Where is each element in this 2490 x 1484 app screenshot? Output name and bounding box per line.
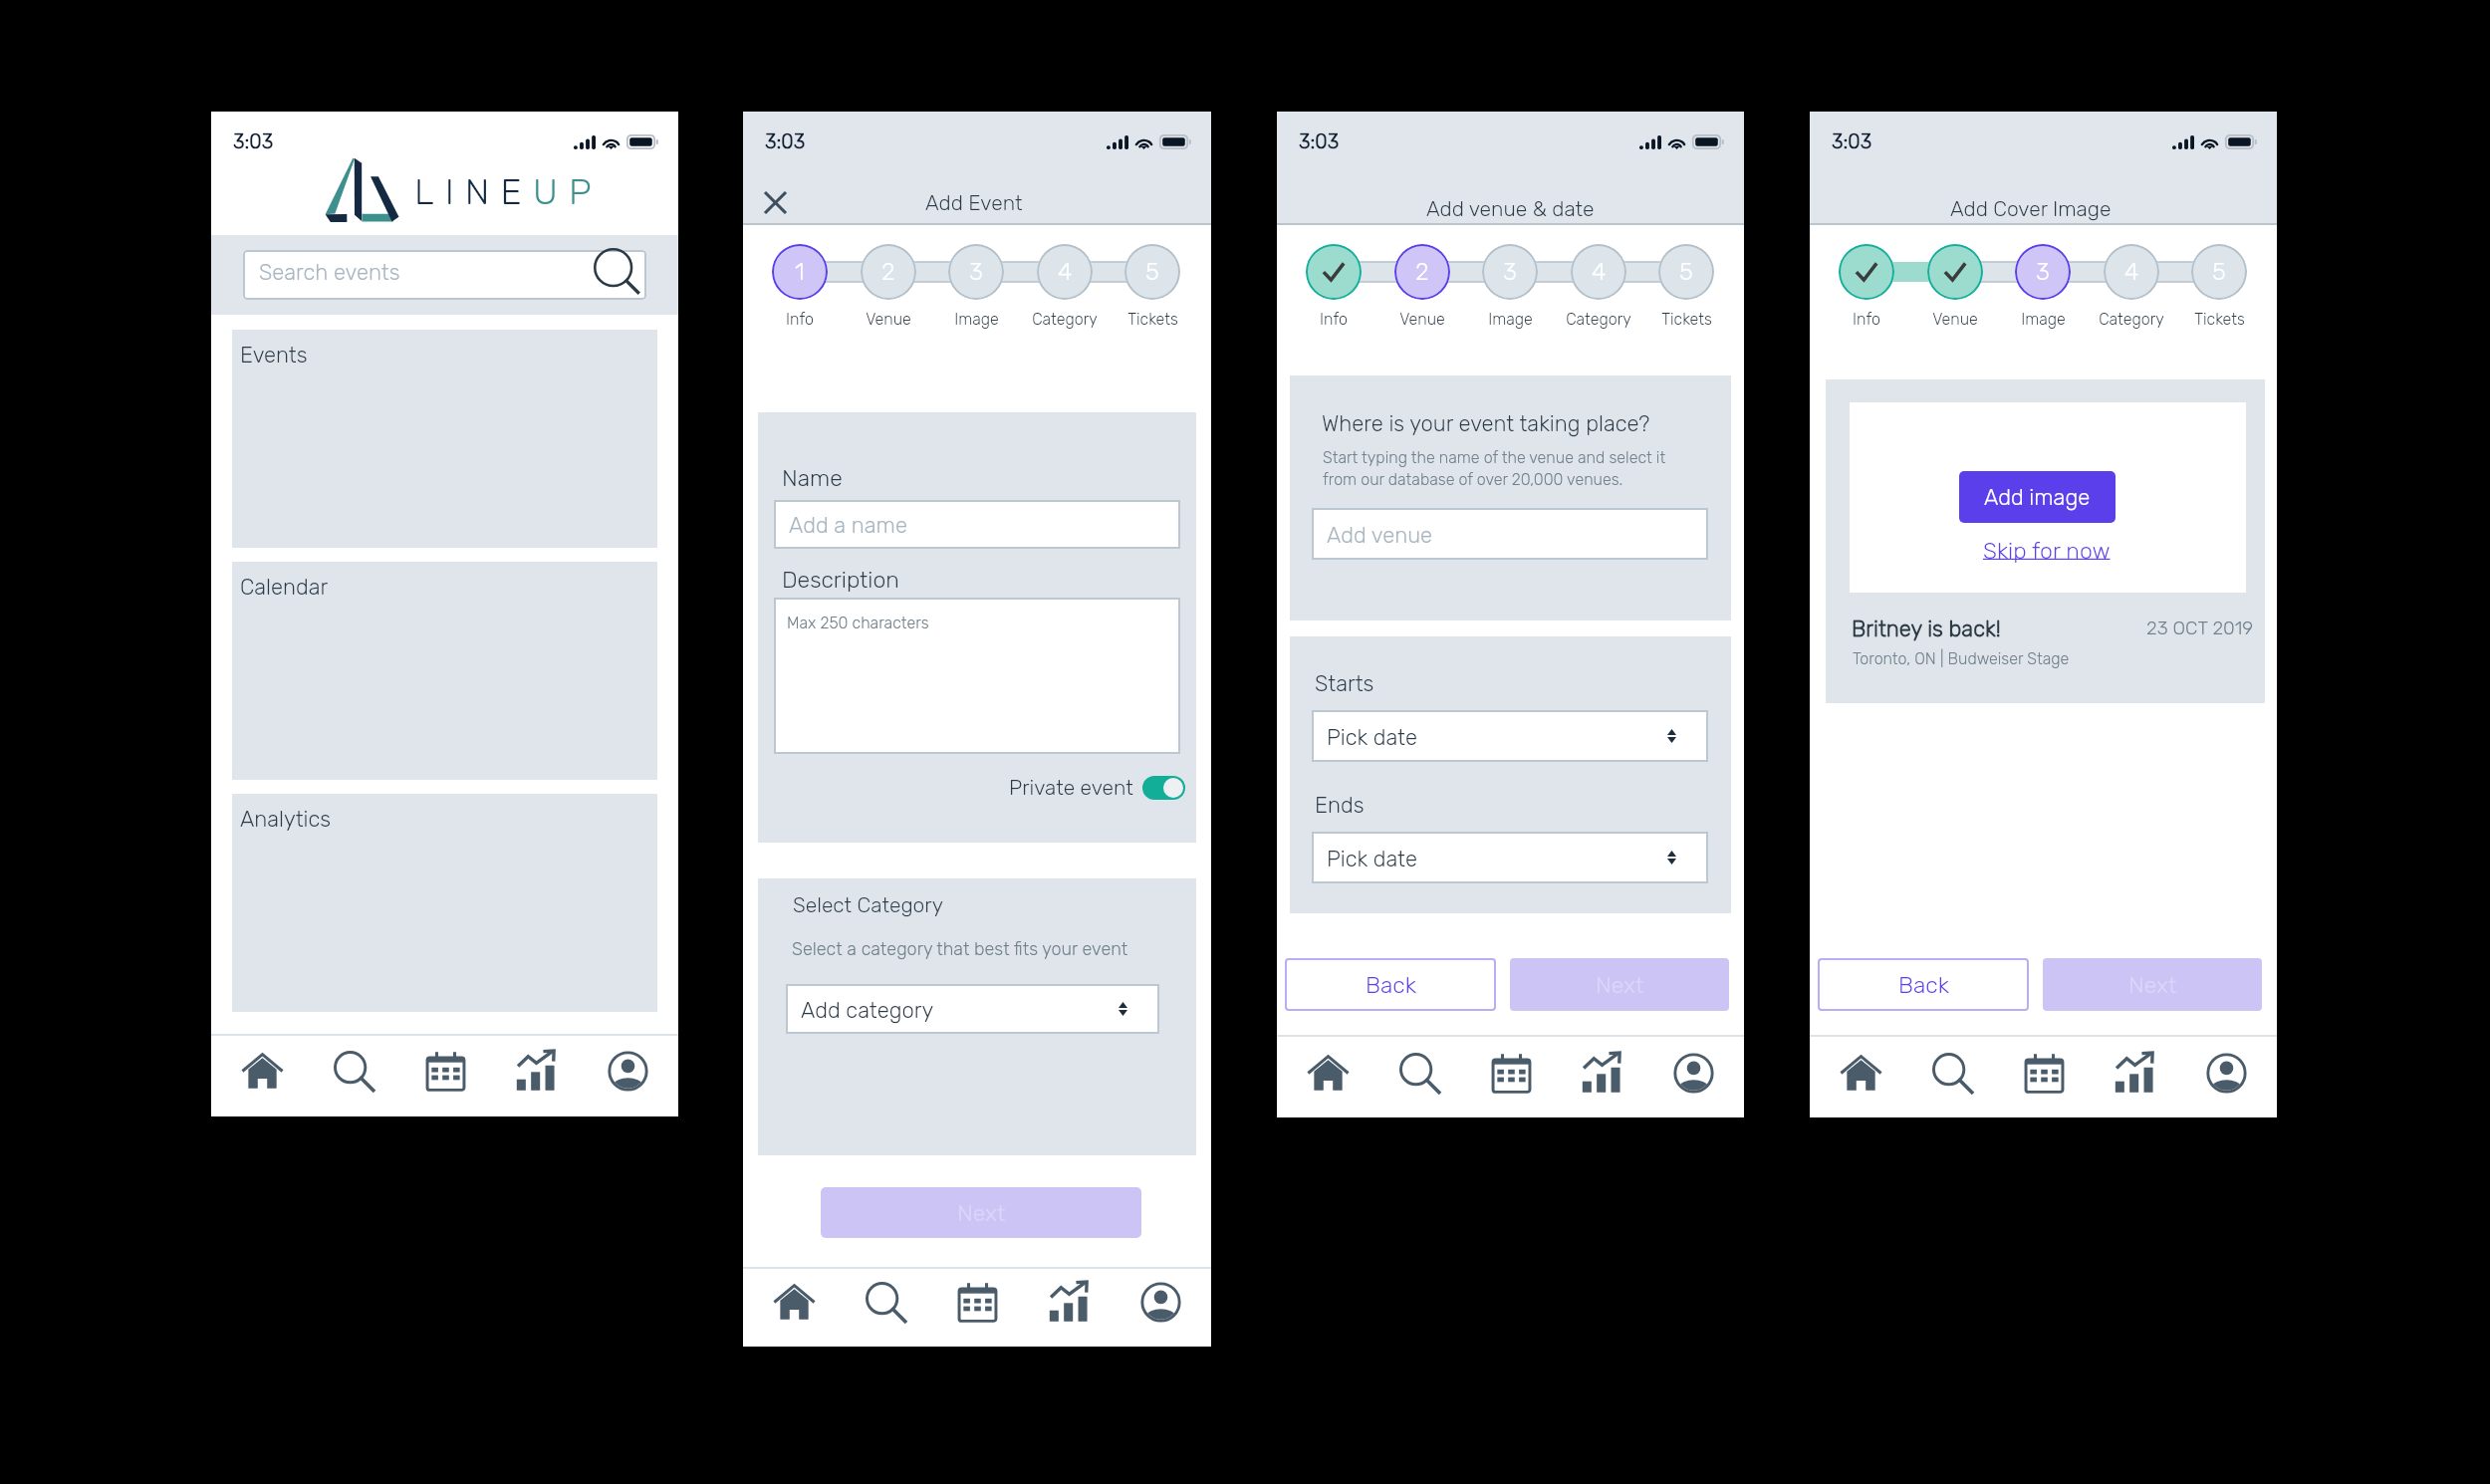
button[interactable]: Pick date (1312, 710, 1708, 762)
button[interactable]: 5 (1108, 244, 1197, 340)
button[interactable]: Add category (786, 984, 1159, 1034)
staticText: Image (954, 310, 999, 329)
button[interactable]: Home (1287, 1037, 1369, 1109)
staticText: 3:03 (1299, 129, 1340, 153)
staticText: from our database of over 20,000 venues. (1323, 470, 1623, 489)
button[interactable]: 3 (931, 244, 1021, 340)
button[interactable]: Analytics (1561, 1037, 1642, 1109)
staticText: Category (2099, 310, 2164, 329)
button[interactable]: Add a name (774, 500, 1180, 549)
button[interactable]: Next (2043, 958, 2262, 1011)
button[interactable]: 5 (2174, 244, 2264, 340)
staticText: Skip for now (1983, 537, 2111, 564)
button[interactable]: Back (1818, 958, 2029, 1011)
staticText: 3 (1503, 258, 1517, 286)
button[interactable]: Analytics (2094, 1037, 2175, 1109)
button[interactable]: Search (845, 1269, 926, 1335)
button[interactable]: Info (1289, 244, 1378, 340)
button[interactable]: 4 (1020, 244, 1110, 340)
button[interactable]: 3 (1998, 244, 2088, 340)
button[interactable]: 4 (2087, 244, 2176, 340)
button[interactable]: Calendar (936, 1269, 1018, 1335)
button[interactable]: Home (221, 1036, 303, 1106)
staticText: Image (1488, 310, 1533, 329)
button[interactable]: 2 (844, 244, 933, 340)
staticText: 3 (2036, 258, 2050, 286)
staticText: Info (1320, 310, 1348, 329)
button[interactable]: Skip for now (1981, 532, 2107, 564)
button[interactable]: Profile (587, 1036, 668, 1106)
button[interactable] (774, 598, 1180, 754)
button[interactable]: 1 (755, 244, 845, 340)
button[interactable] (232, 330, 657, 548)
staticText: Starts (1315, 670, 1374, 696)
staticText: Back (1898, 971, 1949, 998)
staticText: Where is your event taking place? (1322, 410, 1650, 436)
button[interactable]: Next (821, 1187, 1141, 1238)
button[interactable]: Close (764, 191, 787, 214)
button[interactable]: Calendar (404, 1036, 486, 1106)
staticText: 5 (1679, 258, 1693, 286)
button[interactable]: Analytics (1028, 1269, 1110, 1335)
staticText: Description (782, 566, 899, 593)
staticText: Category (1566, 310, 1631, 329)
button[interactable]: 3 (1465, 244, 1555, 340)
staticText: Venue (866, 310, 911, 329)
button[interactable]: Venue (1910, 244, 2000, 340)
button[interactable]: Next (1510, 958, 1729, 1011)
button[interactable]: Pick date (1312, 832, 1708, 883)
staticText: Next (1596, 971, 1644, 998)
button[interactable]: Home (753, 1269, 835, 1335)
staticText: 3:03 (1832, 129, 1872, 153)
button[interactable]: Calendar (2003, 1037, 2085, 1109)
button[interactable]: Search (1911, 1037, 1993, 1109)
staticText: Select Category (793, 892, 943, 917)
staticText: 5 (2212, 258, 2226, 286)
button[interactable]: Search (1378, 1037, 1460, 1109)
staticText: 5 (1145, 258, 1159, 286)
button[interactable]: 4 (1554, 244, 1643, 340)
staticText: Events (240, 342, 308, 368)
staticText: Pick date (1327, 846, 1417, 871)
staticText: Add a name (789, 512, 907, 538)
button[interactable]: Profile (1652, 1037, 1734, 1109)
button[interactable]: 2 (1377, 244, 1467, 340)
button[interactable]: Calendar (1470, 1037, 1552, 1109)
staticText: Next (2128, 971, 2177, 998)
staticText: Add Cover Image (1950, 196, 2112, 221)
staticText: Category (1032, 310, 1098, 329)
button[interactable]: Analytics (495, 1036, 577, 1106)
staticText: Search events (259, 259, 400, 285)
button[interactable]: Profile (2185, 1037, 2267, 1109)
staticText: Max 250 characters (787, 614, 929, 632)
staticText: LINE (414, 170, 533, 213)
button[interactable] (232, 562, 657, 780)
staticText: 4 (2124, 258, 2139, 286)
button[interactable]: Add venue (1312, 508, 1708, 560)
button[interactable]: 5 (1641, 244, 1731, 340)
button[interactable]: Private event toggle (1142, 776, 1185, 800)
staticText: 3 (969, 258, 983, 286)
staticText: 4 (1058, 258, 1073, 286)
staticText: UP (533, 170, 603, 213)
staticText: Start typing the name of the venue and s… (1323, 448, 1666, 467)
staticText: Info (1853, 310, 1880, 329)
staticText: Venue (1932, 310, 1978, 329)
button[interactable]: Back (1285, 958, 1496, 1011)
staticText: Select a category that best fits your ev… (792, 938, 1128, 959)
button[interactable]: Home (1820, 1037, 1901, 1109)
staticText: Calendar (240, 574, 329, 600)
staticText: 1 (795, 258, 805, 286)
button[interactable]: Info (1822, 244, 1911, 340)
staticText: 23 OCT 2019 (2146, 617, 2254, 639)
staticText: 3:03 (233, 129, 274, 153)
staticText: Image (2021, 310, 2066, 329)
button[interactable]: Add image (1959, 471, 2116, 523)
button[interactable]: Search events (243, 250, 646, 300)
staticText: Tickets (1127, 310, 1178, 329)
button[interactable] (232, 794, 657, 1012)
staticText: Back (1366, 971, 1416, 998)
button[interactable]: Search (313, 1036, 394, 1106)
button[interactable]: Profile (1120, 1269, 1201, 1335)
staticText: Add Event (925, 190, 1023, 215)
